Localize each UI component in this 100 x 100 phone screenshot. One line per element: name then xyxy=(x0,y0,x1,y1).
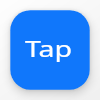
button[interactable] xyxy=(10,10,90,90)
staticText: Tap xyxy=(24,33,73,63)
